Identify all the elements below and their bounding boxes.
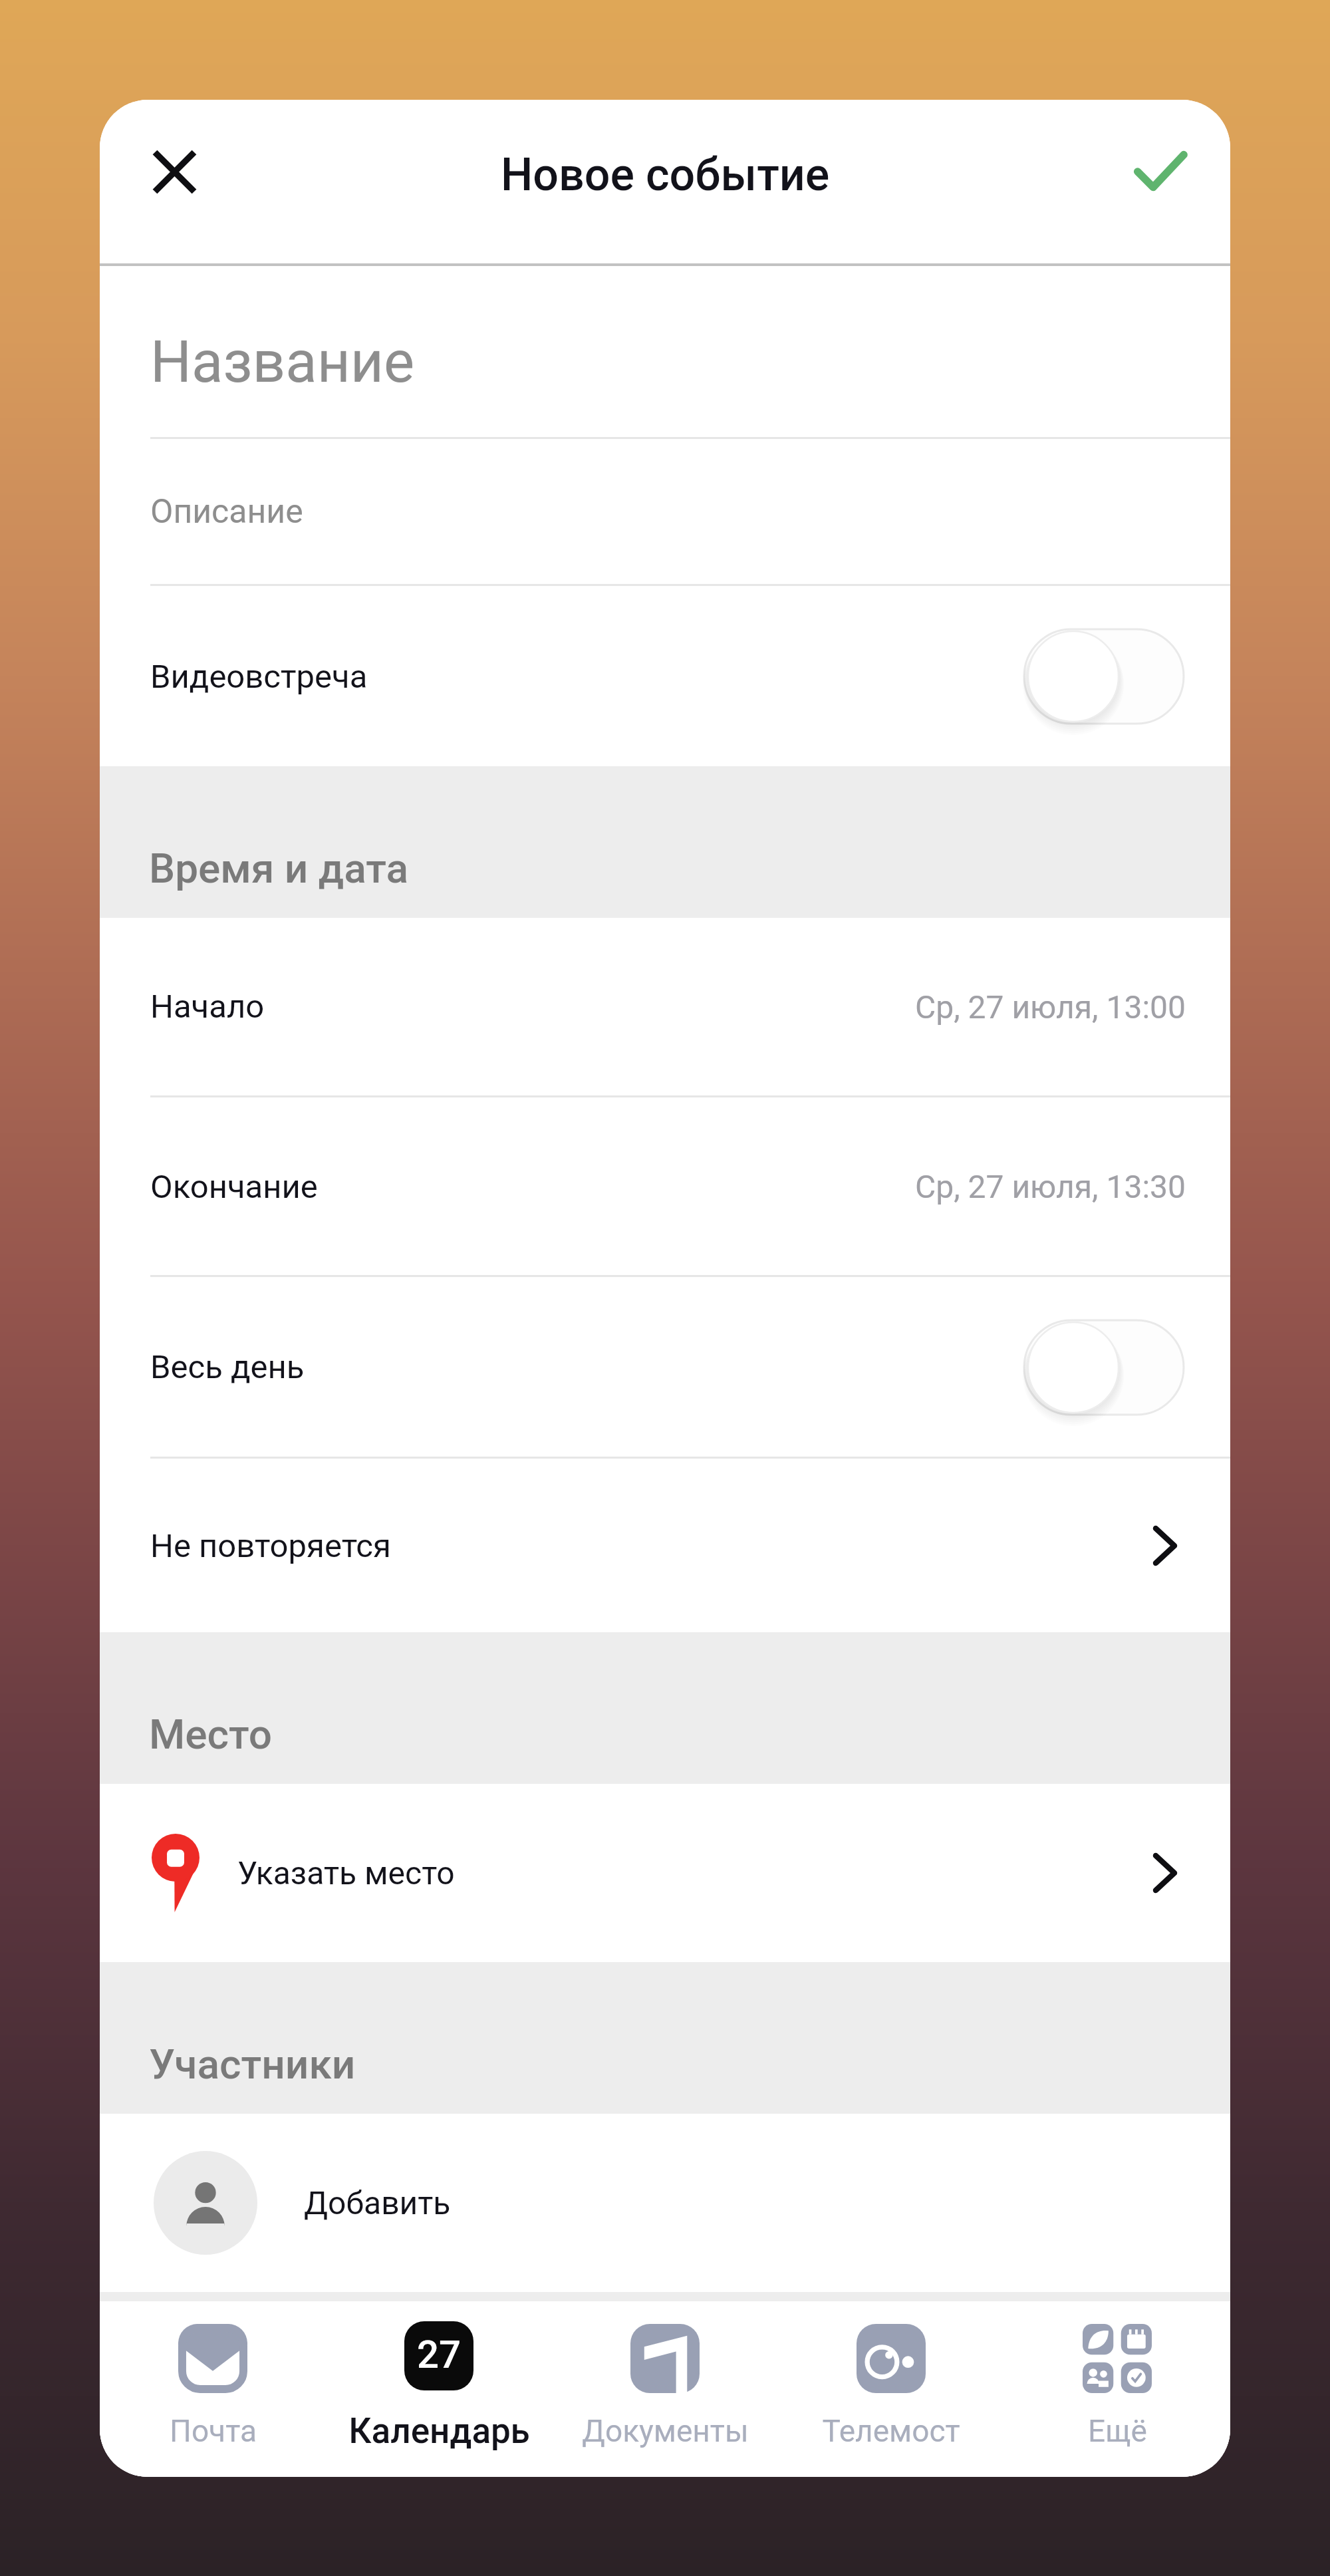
button[interactable]: Указать место [100,1784,1230,1962]
button[interactable]: Название [100,266,1230,437]
staticText: Ср, 27 июля, 13:30 [915,1168,1186,1205]
button[interactable]: Весь день [100,1278,1230,1457]
staticText: Начало [150,988,265,1026]
staticText: 27 [417,2332,461,2377]
staticText: Почта [170,2413,257,2449]
staticText: Видеовстреча [150,658,368,696]
staticText: Место [149,1710,273,1759]
staticText: Время и дата [149,844,409,893]
staticText: Участники [149,2040,356,2088]
staticText: Указать место [237,1854,455,1892]
staticText: Ср, 27 июля, 13:00 [915,988,1186,1026]
button[interactable]: Сохранить [1121,132,1200,212]
button[interactable]: Описание [100,440,1230,584]
button[interactable]: Начало [100,918,1230,1095]
button[interactable]: Окончание [100,1098,1230,1275]
staticText: Документы [582,2413,749,2449]
button[interactable]: Закрыть [134,132,214,212]
button[interactable]: 27 [326,2299,552,2474]
button[interactable]: Не повторяется [100,1459,1230,1632]
staticText: Название [150,328,415,396]
button[interactable]: Ещё [1004,2299,1230,2474]
staticText: Окончание [150,1168,318,1206]
staticText: Добавить [304,2184,451,2221]
button[interactable]: Добавить [100,2114,1230,2292]
staticText: Телемост [822,2413,960,2449]
button[interactable]: Почта [100,2299,326,2474]
staticText: Ещё [1088,2413,1147,2449]
button[interactable]: Видеовстреча [100,587,1230,766]
button[interactable]: Телемост [778,2299,1004,2474]
button[interactable]: Документы [552,2299,778,2474]
staticText: Весь день [150,1348,305,1386]
staticText: Описание [150,492,303,531]
staticText: Не повторяется [150,1527,391,1565]
staticText: Новое событие [501,148,830,202]
staticText: Календарь [348,2410,530,2452]
